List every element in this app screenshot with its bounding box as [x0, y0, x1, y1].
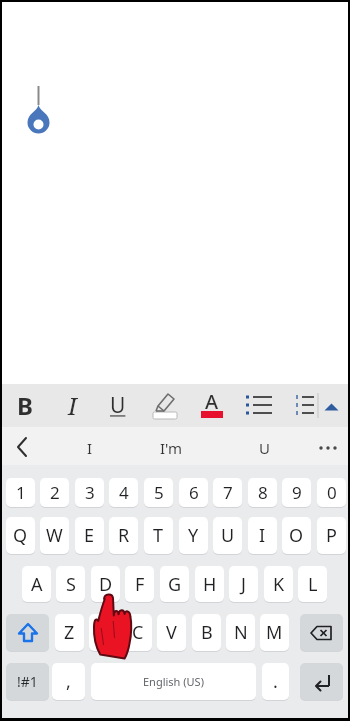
button[interactable] — [242, 388, 276, 423]
button[interactable] — [322, 388, 342, 423]
button[interactable]: K — [264, 566, 293, 602]
staticText: B — [17, 389, 33, 422]
button[interactable]: 8 — [248, 478, 277, 507]
staticText: H — [203, 572, 217, 597]
button[interactable]: Q — [6, 517, 35, 554]
staticText: G — [168, 572, 182, 597]
button[interactable]: N — [226, 614, 255, 651]
button[interactable]: D — [91, 566, 120, 602]
staticText: 4 — [119, 481, 129, 504]
staticText: R — [118, 523, 130, 548]
staticText: Z — [64, 620, 75, 645]
staticText: X — [98, 620, 109, 645]
button[interactable]: A — [195, 388, 229, 423]
button[interactable]: !#1 — [6, 663, 49, 700]
staticText: 7 — [223, 481, 233, 504]
button[interactable] — [148, 388, 182, 423]
staticText: N — [234, 620, 248, 645]
button[interactable]: I'm — [140, 431, 202, 465]
button[interactable]: U — [234, 431, 294, 465]
button[interactable]: 4 — [109, 478, 138, 507]
button[interactable]: O — [282, 517, 311, 554]
staticText: J — [241, 572, 246, 597]
button[interactable]: H — [195, 566, 224, 602]
button[interactable]: B — [192, 614, 221, 651]
staticText: U — [259, 438, 270, 458]
staticText: W — [46, 523, 63, 548]
staticText: . — [273, 669, 278, 694]
button[interactable]: . — [262, 663, 289, 700]
staticText: O — [289, 523, 304, 548]
staticText: K — [273, 572, 285, 597]
staticText: A — [31, 572, 43, 597]
button[interactable]: 2 — [40, 478, 69, 507]
staticText: 9 — [292, 481, 302, 504]
button[interactable]: V — [157, 614, 186, 651]
staticText: T — [153, 523, 164, 548]
staticText: 3 — [85, 481, 95, 504]
button[interactable]: J — [229, 566, 258, 602]
staticText: B — [201, 620, 213, 645]
button[interactable]: Y — [179, 517, 208, 554]
button[interactable]: X — [89, 614, 118, 651]
button[interactable]: I — [60, 431, 120, 465]
button[interactable]: M — [260, 614, 289, 651]
button[interactable]: 1 — [6, 478, 35, 507]
staticText: U — [110, 391, 126, 420]
button[interactable] — [300, 614, 343, 651]
button[interactable]: U — [213, 517, 242, 554]
button[interactable] — [4, 431, 44, 465]
button[interactable] — [300, 663, 343, 700]
button[interactable]: W — [40, 517, 69, 554]
staticText: A — [205, 388, 219, 415]
staticText: D — [99, 572, 113, 597]
button[interactable]: I — [248, 517, 277, 554]
button[interactable]: F — [125, 566, 154, 602]
staticText: P — [326, 523, 337, 548]
button[interactable]: S — [56, 566, 85, 602]
staticText: S — [66, 572, 76, 597]
button[interactable]: 5 — [144, 478, 173, 507]
staticText: F — [135, 572, 145, 597]
button[interactable] — [289, 388, 317, 423]
button[interactable]: C — [123, 614, 152, 651]
button[interactable]: B — [8, 388, 42, 423]
button[interactable]: 6 — [179, 478, 208, 507]
staticText: Q — [13, 523, 28, 548]
button[interactable]: English (US) — [91, 663, 256, 700]
staticText: 2 — [50, 481, 60, 504]
button[interactable]: E — [75, 517, 104, 554]
button[interactable]: 3 — [75, 478, 104, 507]
button[interactable]: A — [22, 566, 51, 602]
staticText: I — [87, 438, 93, 458]
staticText: U — [221, 523, 235, 548]
button[interactable]: 7 — [213, 478, 242, 507]
staticText: L — [308, 572, 318, 597]
staticText: 6 — [189, 481, 199, 504]
staticText: V — [166, 620, 177, 645]
button[interactable]: T — [144, 517, 173, 554]
staticText: Y — [188, 523, 199, 548]
button[interactable]: R — [109, 517, 138, 554]
button[interactable]: 0 — [317, 478, 346, 507]
button[interactable] — [6, 614, 49, 651]
staticText: 5 — [154, 481, 164, 504]
button[interactable]: , — [52, 663, 85, 700]
button[interactable]: I — [55, 388, 89, 423]
button[interactable]: P — [317, 517, 346, 554]
staticText: 1 — [16, 481, 26, 504]
staticText: I'm — [160, 438, 183, 458]
staticText: I — [68, 389, 77, 422]
button[interactable]: U — [101, 388, 135, 423]
button[interactable]: Z — [55, 614, 84, 651]
staticText: E — [84, 523, 95, 548]
staticText: , — [66, 669, 71, 694]
button[interactable] — [310, 431, 346, 465]
staticText: C — [132, 620, 144, 645]
staticText: English (US) — [143, 674, 204, 689]
staticText: M — [266, 620, 283, 645]
staticText: !#1 — [17, 672, 38, 691]
button[interactable]: 9 — [282, 478, 311, 507]
button[interactable]: L — [298, 566, 327, 602]
button[interactable]: G — [160, 566, 189, 602]
